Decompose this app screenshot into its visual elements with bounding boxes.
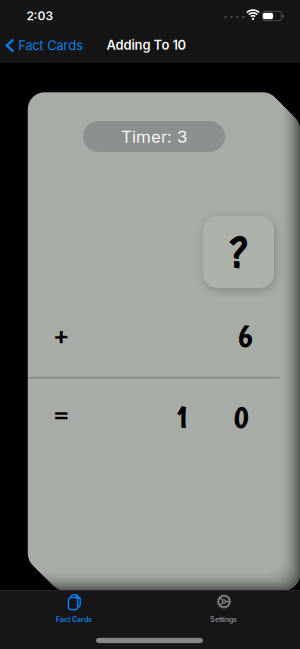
button[interactable]: Back	[7, 38, 83, 53]
staticText: +	[52, 323, 69, 348]
button[interactable]: Fact Cards	[0, 590, 150, 638]
staticText: Settings	[210, 615, 237, 624]
staticText: Fact Cards	[56, 615, 92, 624]
staticText: ?	[229, 226, 247, 278]
staticText: 2:03	[26, 9, 53, 23]
staticText: Fact Cards	[18, 38, 83, 53]
staticText: =	[52, 402, 69, 427]
staticText: 1	[174, 396, 190, 436]
button[interactable]: Reveal hidden number	[203, 216, 274, 288]
staticText: Timer: 3	[121, 126, 187, 147]
button[interactable]: Settings	[150, 590, 300, 638]
staticText: Adding To 10	[106, 37, 186, 53]
staticText: 6	[237, 315, 253, 355]
staticText: 0	[233, 396, 249, 436]
